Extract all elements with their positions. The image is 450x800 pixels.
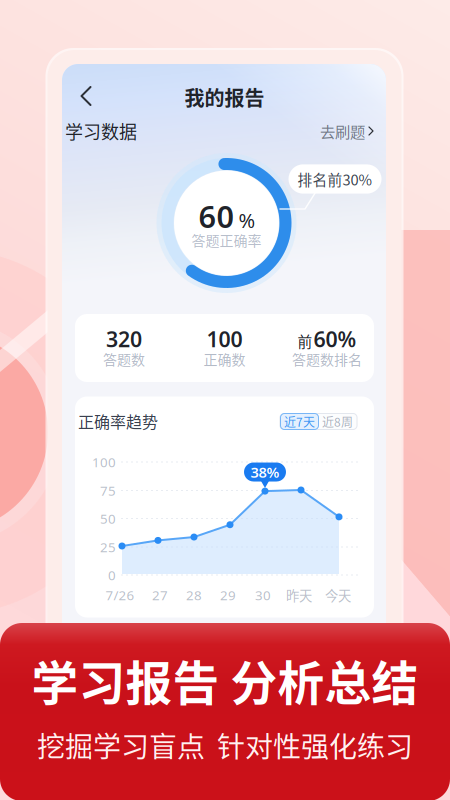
staticText: 50 <box>100 510 116 527</box>
staticText: 60% <box>313 325 356 353</box>
staticText: 近7天 <box>284 413 315 430</box>
button[interactable]: 近8周 <box>318 413 357 430</box>
staticText: 前 <box>297 330 312 351</box>
staticText: 0 <box>108 566 116 584</box>
staticText: 27 <box>152 586 168 604</box>
staticText: 学习报告 分析总结 <box>31 646 418 714</box>
staticText: 近8周 <box>322 413 353 430</box>
staticText: 60 <box>198 196 234 236</box>
staticText: 320 <box>106 325 142 353</box>
staticText: 100 <box>206 325 242 353</box>
staticText: 正确数 <box>203 349 245 369</box>
staticText: 答题数 <box>103 349 145 369</box>
staticText: 75 <box>100 482 116 499</box>
staticText: 25 <box>100 538 116 556</box>
staticText: 学习数据 <box>65 118 137 144</box>
staticText: 7/26 <box>105 586 134 604</box>
staticText: 38% <box>250 462 279 482</box>
staticText: 去刷题 <box>320 120 365 142</box>
button[interactable]: 去刷题 <box>316 117 378 145</box>
staticText: 昨天 <box>286 585 312 605</box>
button[interactable]: 近7天 <box>280 413 319 430</box>
staticText: 29 <box>220 586 236 604</box>
staticText: 100 <box>92 453 116 471</box>
staticText: 今天 <box>325 585 351 605</box>
staticText: 正确率趋势 <box>78 409 158 433</box>
staticText: % <box>238 207 255 233</box>
staticText: 我的报告 <box>184 82 264 111</box>
staticText: 答题正确率 <box>191 230 261 250</box>
staticText: 28 <box>186 586 202 604</box>
staticText: 挖掘学习盲点 针对性强化练习 <box>37 725 413 765</box>
button[interactable]: 返回 <box>72 82 100 110</box>
staticText: 30 <box>255 586 271 604</box>
staticText: 排名前30% <box>297 168 372 190</box>
staticText: 答题数排名 <box>292 349 362 369</box>
